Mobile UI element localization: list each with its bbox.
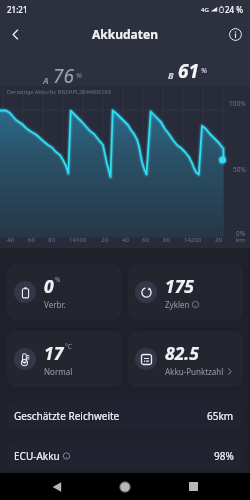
- button[interactable]: 17: [7, 331, 122, 387]
- staticText: 14200: [184, 236, 202, 244]
- staticText: 50%: [233, 165, 246, 174]
- staticText: 82.5: [165, 341, 199, 365]
- staticText: 76: [53, 63, 74, 89]
- staticText: km: [236, 236, 245, 244]
- staticText: 40: [7, 236, 14, 244]
- staticText: Akku-Punktzahl: [165, 366, 224, 377]
- button[interactable]: Back: [23, 473, 91, 500]
- staticText: A: [43, 74, 49, 86]
- staticText: %: [201, 65, 207, 75]
- staticText: 20: [215, 236, 222, 244]
- button[interactable]: Home: [91, 473, 159, 500]
- staticText: 100%: [229, 99, 246, 108]
- staticText: Verbr.: [44, 299, 66, 310]
- staticText: 98%: [214, 449, 234, 463]
- button[interactable]: 175: [128, 264, 243, 320]
- staticText: 17: [44, 341, 64, 365]
- staticText: 80: [163, 236, 170, 244]
- staticText: 14100: [69, 236, 87, 244]
- staticText: 0: [44, 274, 54, 298]
- staticText: 0%: [236, 229, 246, 238]
- button[interactable]: ECU-Akku: [7, 441, 243, 470]
- button[interactable]: Recents: [159, 473, 227, 500]
- staticText: %: [76, 70, 82, 80]
- staticText: 4G: [201, 6, 209, 14]
- staticText: %: [55, 275, 61, 284]
- staticText: 65km: [207, 409, 234, 423]
- staticText: 21:21: [7, 4, 28, 15]
- staticText: Geschätzte Reichweite: [14, 409, 120, 423]
- button[interactable]: Info: [220, 19, 250, 49]
- staticText: 61: [178, 58, 199, 84]
- staticText: 80: [48, 236, 55, 244]
- staticText: Normal: [44, 366, 73, 377]
- staticText: 175: [165, 274, 194, 298]
- staticText: ECU-Akku: [14, 449, 60, 463]
- staticText: 40: [122, 236, 129, 244]
- staticText: 20: [101, 236, 108, 244]
- button[interactable]: 82.5: [128, 331, 243, 387]
- staticText: Akkudaten: [92, 26, 158, 42]
- staticText: 24 %: [225, 4, 244, 15]
- staticText: °C: [65, 342, 72, 351]
- staticText: Derzeitige Akku-Nr. BNSHPL2B44600169: [7, 88, 111, 95]
- staticText: B: [168, 69, 174, 81]
- button[interactable]: Geschätzte Reichweite: [7, 401, 243, 430]
- staticText: 60: [28, 236, 35, 244]
- button[interactable]: 0: [7, 264, 122, 320]
- button[interactable]: Back: [0, 19, 30, 49]
- staticText: 60: [142, 236, 149, 244]
- button[interactable]: A: [0, 49, 125, 86]
- button[interactable]: B: [125, 49, 250, 86]
- staticText: Zyklen: [165, 299, 190, 310]
